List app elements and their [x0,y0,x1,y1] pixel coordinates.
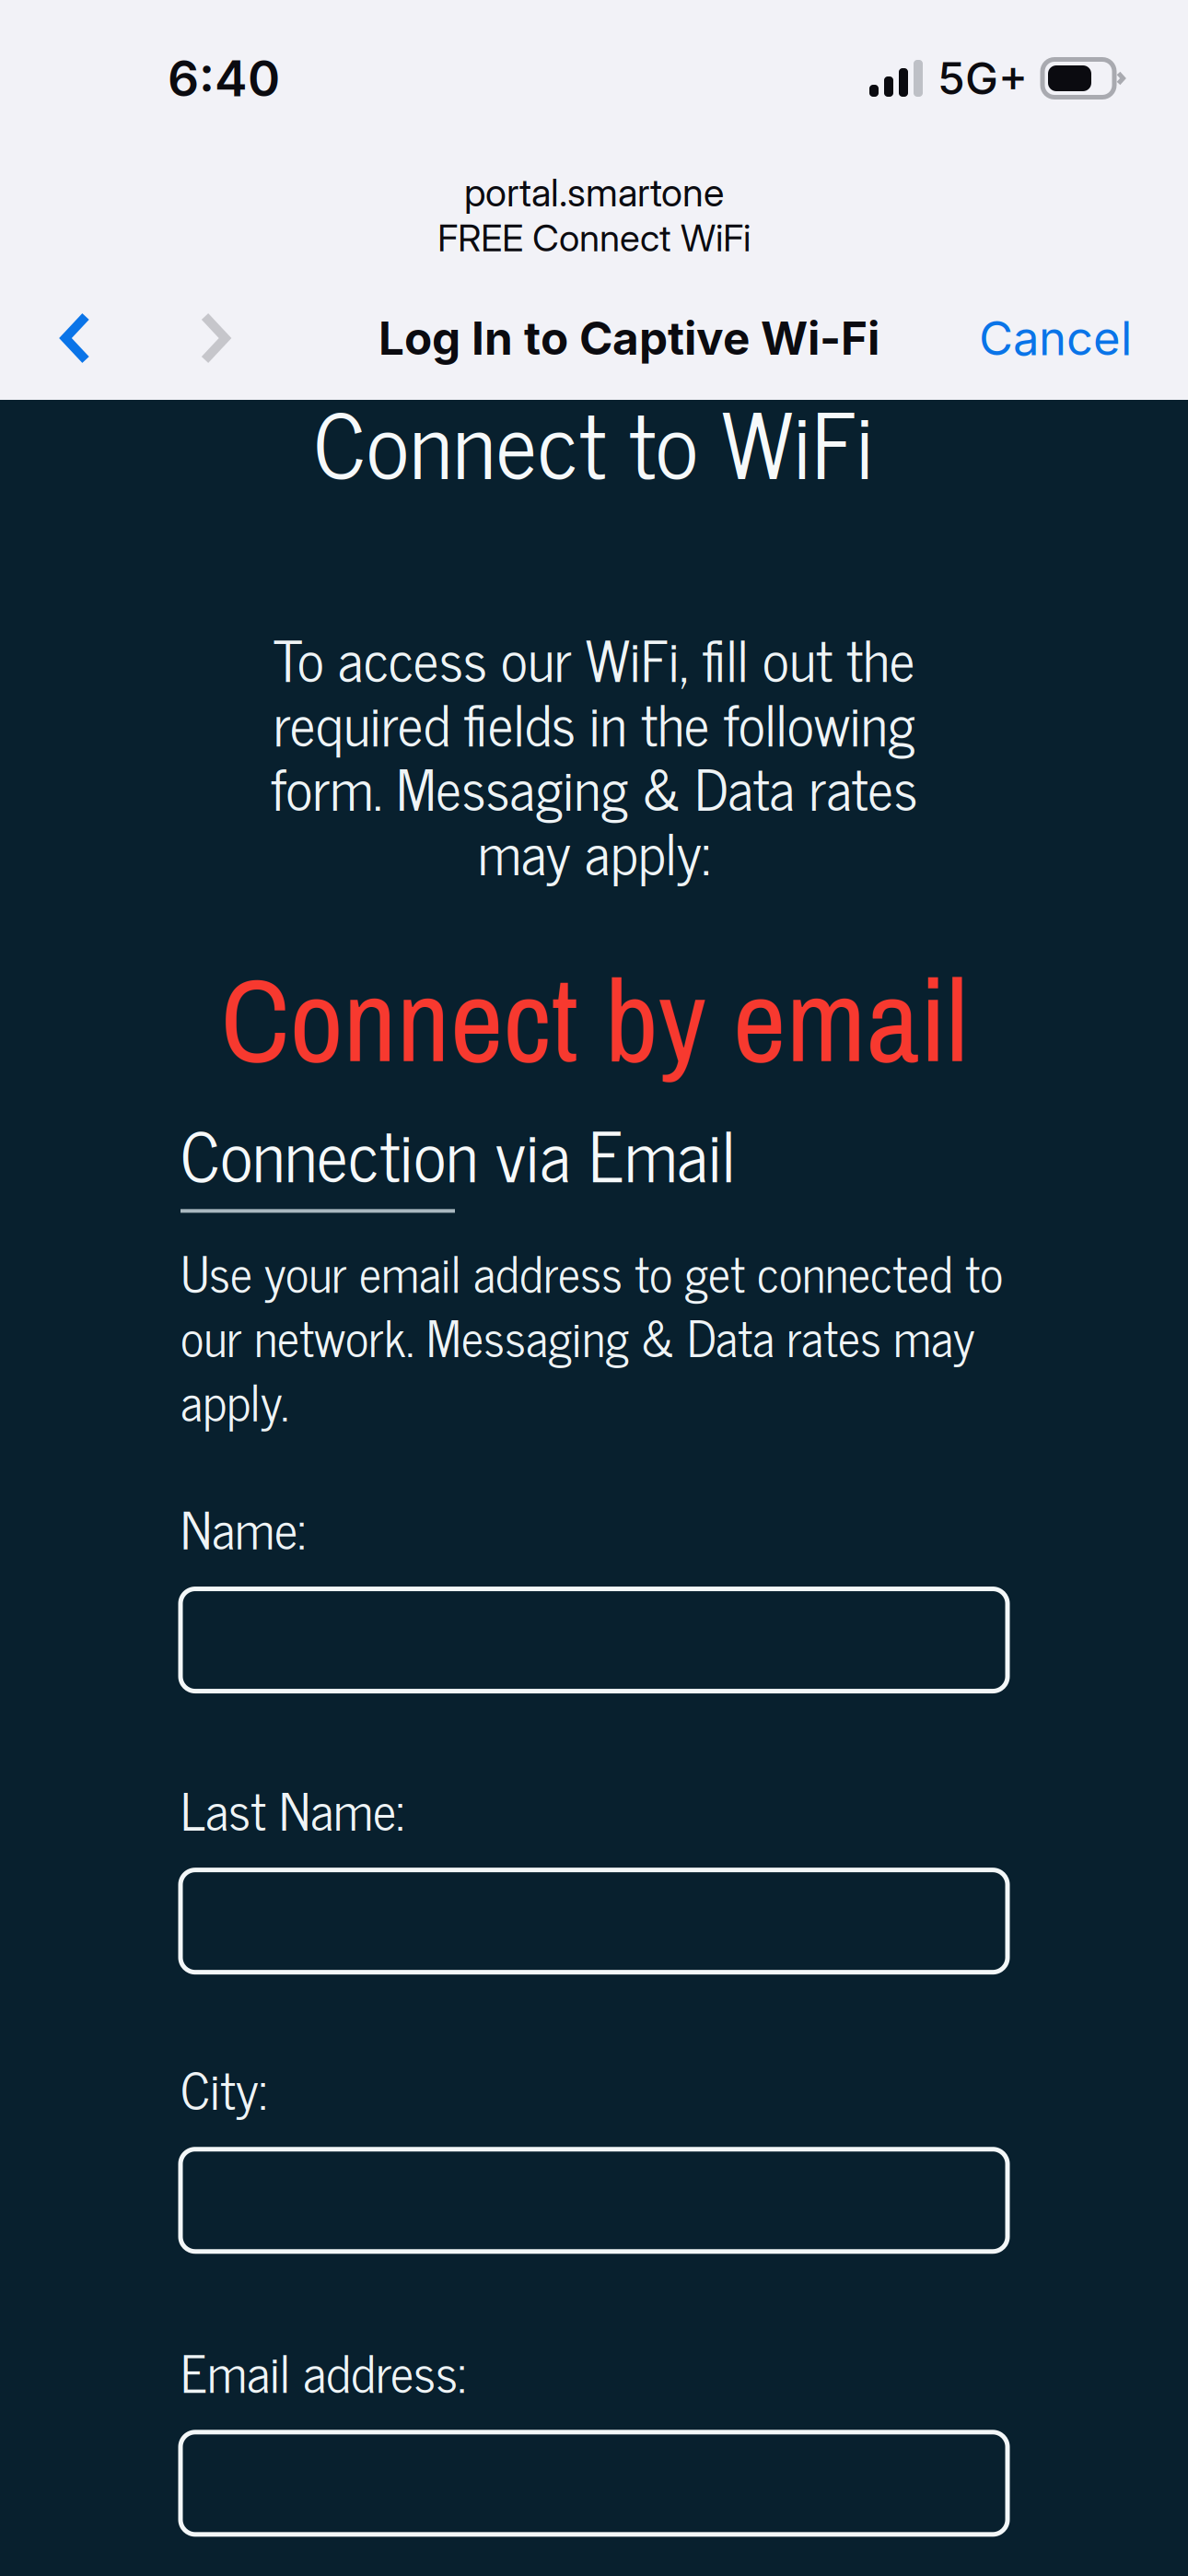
staticText: 6:40 [168,49,280,108]
staticText: Use your email address to get connected … [181,1231,1003,1440]
staticText: Log In to Captive Wi-Fi [379,311,879,366]
staticText: Last Name: [181,1766,404,1851]
staticText: City: [181,2045,267,2130]
staticText: FREE Connect WiFi [437,216,751,260]
button[interactable]: Back [0,292,151,384]
staticText: To access our WiFi, fill out the require… [271,611,917,897]
button[interactable]: Forward [151,292,279,384]
button[interactable]: Cancel [979,292,1188,384]
staticText: Connect by email [221,940,967,1098]
staticText: Connection via Email [181,1096,736,1209]
staticText: Cancel [979,310,1132,366]
staticText: portal.smartone [464,170,724,216]
staticText: Email address: [181,2328,466,2413]
staticText: Connect to WiFi [314,365,874,514]
staticText: Name: [181,1485,306,1570]
staticText: 5G+ [938,52,1028,105]
